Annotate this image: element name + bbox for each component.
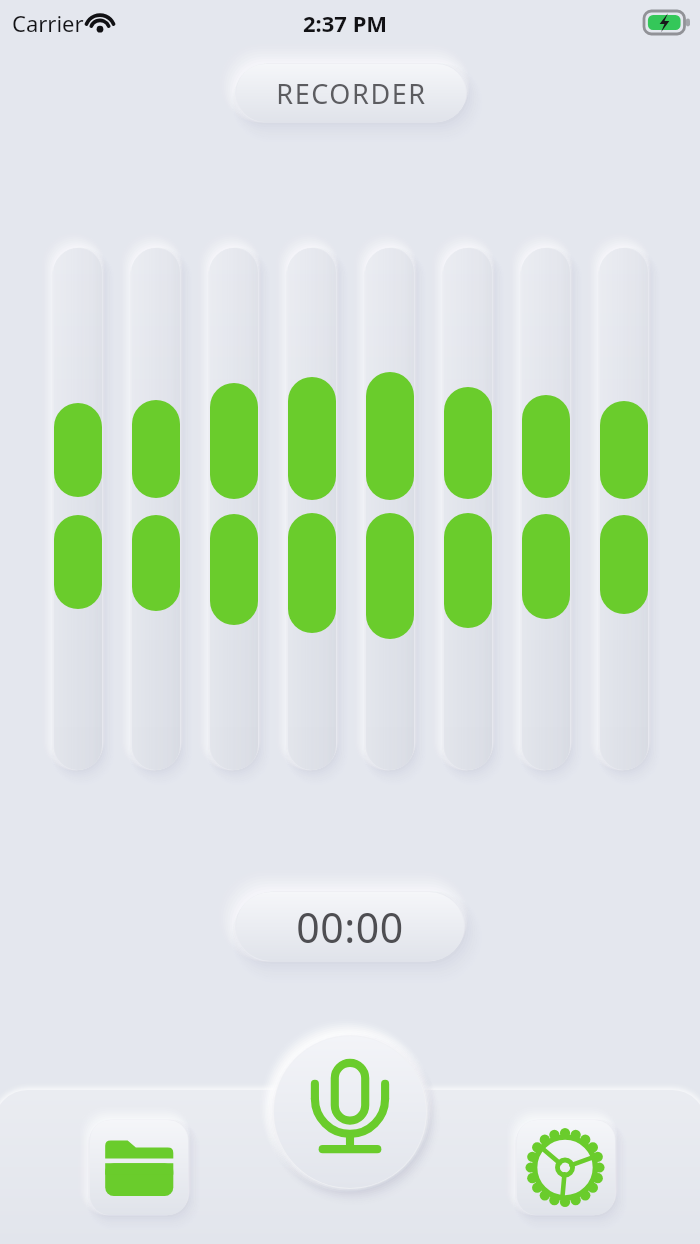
button[interactable]: Record — [272, 1034, 428, 1190]
button[interactable]: Recordings folder — [90, 1120, 188, 1215]
staticText: 00:00 — [296, 899, 404, 955]
button[interactable]: RECORDER — [236, 64, 466, 122]
staticText: RECORDER — [276, 75, 427, 112]
button[interactable]: Settings — [517, 1120, 615, 1215]
staticText: 2:37 PM — [303, 8, 388, 38]
button[interactable]: 00:00 — [236, 892, 464, 961]
staticText: Carrier — [12, 8, 84, 38]
